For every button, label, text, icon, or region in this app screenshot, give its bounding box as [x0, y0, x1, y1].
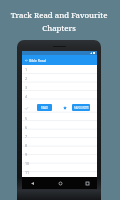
staticText: 4 — [25, 94, 28, 99]
button[interactable]: 1 — [22, 65, 97, 74]
button[interactable]: 9 — [22, 150, 97, 159]
button[interactable]: 5 — [22, 114, 97, 123]
button[interactable]: Navigate up — [23, 57, 29, 63]
staticText: Track Read and Favourite Chapters — [0, 10, 119, 33]
staticText: Bible Read — [29, 58, 46, 63]
staticText: 8 — [25, 143, 28, 148]
button[interactable]: Mark read — [23, 105, 29, 111]
button[interactable]: 2 — [22, 74, 97, 83]
button[interactable]: FAVOURITE — [72, 104, 90, 111]
staticText: 9 — [25, 152, 28, 157]
staticText: 6 — [25, 125, 28, 130]
staticText: FAVOURITE — [74, 106, 89, 110]
button[interactable]: 8 — [22, 141, 97, 150]
staticText: 7 — [25, 134, 28, 139]
button[interactable]: Home — [57, 180, 63, 186]
staticText: 1 — [25, 67, 28, 72]
staticText: 5 — [25, 116, 28, 121]
staticText: 11 — [25, 170, 30, 175]
button[interactable]: 10 — [22, 159, 97, 168]
button[interactable]: READ — [37, 104, 52, 111]
button[interactable]: Back — [29, 180, 35, 186]
button[interactable]: 4 — [22, 92, 97, 101]
button[interactable]: Favourite — [62, 105, 68, 111]
button[interactable]: 6 — [22, 123, 97, 132]
button[interactable]: 11 — [22, 168, 97, 177]
button[interactable]: 3 — [22, 83, 97, 92]
button[interactable]: Recents — [84, 180, 90, 186]
staticText: 2 — [25, 76, 28, 81]
staticText: 10 — [25, 161, 30, 166]
button[interactable]: 7 — [22, 132, 97, 141]
staticText: 3 — [25, 85, 28, 90]
staticText: READ — [41, 106, 49, 110]
